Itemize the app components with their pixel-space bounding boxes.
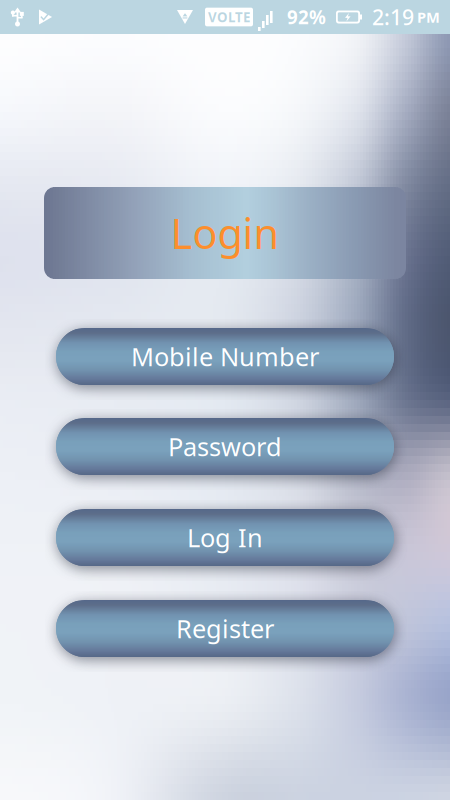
- button[interactable]: Register: [56, 600, 394, 657]
- staticText: 2:19: [372, 3, 414, 31]
- staticText: Register: [176, 612, 274, 645]
- button[interactable]: Log In: [56, 509, 394, 566]
- staticText: VOLTE: [208, 8, 250, 26]
- staticText: Mobile Number: [131, 340, 319, 373]
- button[interactable]: Password: [56, 418, 394, 475]
- button[interactable]: Mobile Number: [56, 328, 394, 385]
- staticText: Log In: [187, 521, 263, 554]
- staticText: Login: [170, 206, 279, 260]
- staticText: 92%: [287, 5, 326, 29]
- staticText: Password: [168, 430, 282, 463]
- staticText: PM: [417, 7, 440, 27]
